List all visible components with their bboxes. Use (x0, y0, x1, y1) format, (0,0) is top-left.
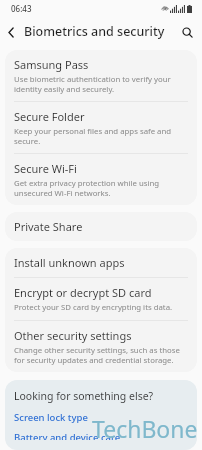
staticText: Change other security settings, such as … (14, 345, 188, 365)
staticText: 06:43 (11, 3, 32, 14)
staticText: Encrypt or decrypt SD card (14, 285, 152, 300)
button[interactable]: Other security settings (5, 321, 197, 372)
button[interactable]: Search (176, 21, 198, 43)
button[interactable]: Secure Wi-Fi (5, 154, 197, 205)
button[interactable]: Secure Folder (5, 102, 197, 153)
staticText: TechBone (92, 413, 198, 444)
button[interactable]: Battery and device care (14, 431, 121, 440)
staticText: Private Share (14, 219, 83, 234)
button[interactable]: Private Share (5, 212, 197, 241)
staticText: Other security settings (14, 328, 132, 343)
staticText: Get extra privacy protection while using… (14, 178, 188, 198)
staticText: Protect your SD card by encrypting its d… (14, 302, 173, 313)
staticText: Screen lock type (14, 411, 88, 424)
staticText: Biometrics and security (24, 23, 165, 40)
staticText: Keep your personal files and apps safe a… (14, 126, 188, 146)
staticText: Use biometric authentication to verify y… (14, 74, 188, 94)
button[interactable]: Screen lock type (14, 411, 88, 424)
button[interactable]: Encrypt or decrypt SD card (5, 278, 197, 320)
staticText: Battery and device care (14, 431, 121, 440)
button[interactable]: Install unknown apps (5, 248, 197, 277)
button[interactable]: Samsung Pass (5, 50, 197, 101)
staticText: Install unknown apps (14, 255, 125, 270)
staticText: Secure Folder (14, 109, 85, 124)
staticText: Samsung Pass (14, 57, 89, 72)
button[interactable]: Back (0, 21, 22, 43)
staticText: Looking for something else? (14, 389, 154, 403)
staticText: Secure Wi-Fi (14, 161, 77, 176)
